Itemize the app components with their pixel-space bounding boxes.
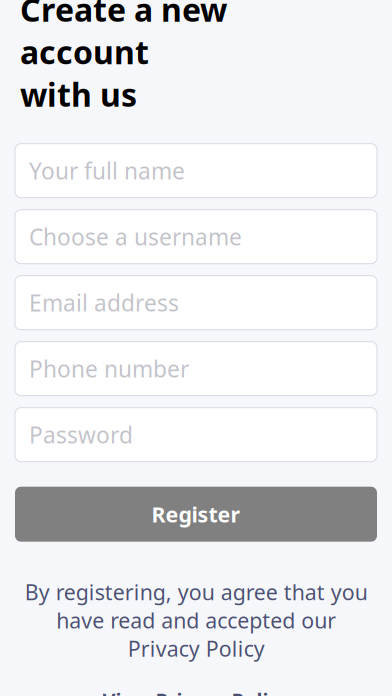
button[interactable]: Phone number [15, 342, 377, 396]
staticText: By registering, you agree that you have … [24, 578, 367, 663]
staticText: Password [29, 420, 133, 450]
button[interactable]: Choose a username [15, 210, 377, 264]
staticText: Email address [29, 288, 179, 318]
staticText: Register [151, 500, 240, 528]
button[interactable]: Register [15, 487, 377, 542]
button[interactable]: View Privacy Policy [82, 681, 309, 696]
button[interactable]: Your full name [15, 144, 377, 198]
staticText: Your full name [29, 156, 185, 186]
staticText: Phone number [29, 354, 189, 384]
button[interactable]: Password [15, 408, 377, 462]
staticText: View Privacy Policy [102, 687, 289, 696]
staticText: Create a new account with us [20, 0, 227, 116]
button[interactable]: Email address [15, 276, 377, 330]
staticText: Choose a username [29, 222, 242, 252]
